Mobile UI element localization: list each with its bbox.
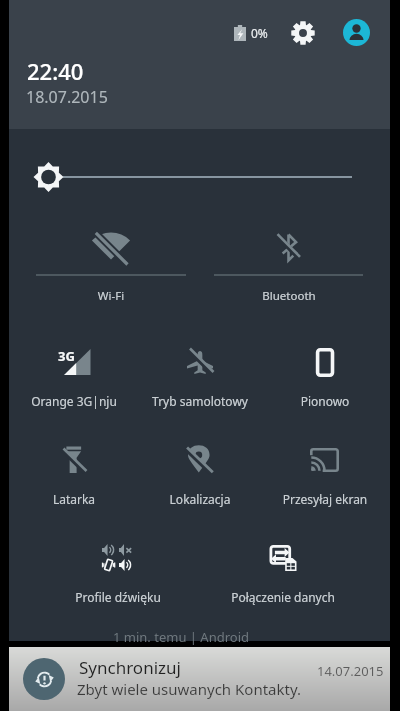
staticText: Lokalizacja <box>138 491 262 507</box>
button[interactable]: Przesyłaj ekran <box>263 426 387 494</box>
staticText: Zbyt wiele usuwanych Kontakty. <box>77 679 301 699</box>
button[interactable]: Połączenie danych <box>221 524 345 592</box>
button[interactable]: Wi-Fi toggle <box>36 215 186 307</box>
staticText: 18.07.2015 <box>26 86 108 108</box>
button[interactable]: Latarka <box>12 426 136 494</box>
button[interactable]: Brightness <box>9 150 390 204</box>
staticText: Tryb samolotowy <box>138 393 262 409</box>
button[interactable]: Bluetooth toggle <box>214 215 363 307</box>
button[interactable]: User profile <box>335 11 377 53</box>
staticText: 3G <box>58 347 75 365</box>
button[interactable]: Settings <box>282 12 324 54</box>
staticText: Orange 3G|nju <box>12 393 136 409</box>
button[interactable]: Lokalizacja <box>138 426 262 494</box>
button[interactable]: Synchronizuj <box>9 647 390 711</box>
button[interactable]: Pionowo <box>263 328 387 396</box>
staticText: Latarka <box>12 491 136 507</box>
staticText: Połączenie danych <box>221 589 345 605</box>
button[interactable]: Profile dźwięku <box>56 524 180 592</box>
button[interactable]: Tryb samolotowy <box>138 328 262 396</box>
staticText: Bluetooth <box>249 288 329 304</box>
staticText: Profile dźwięku <box>56 589 180 605</box>
button[interactable]: Orange 3G|nju <box>12 328 136 396</box>
staticText: 22:40 <box>27 56 84 86</box>
staticText: Synchronizuj <box>79 656 181 679</box>
staticText: Pionowo <box>263 393 387 409</box>
staticText: 0% <box>251 25 268 41</box>
staticText: 1 min. temu | Android <box>113 628 250 646</box>
staticText: Wi-Fi <box>71 288 151 304</box>
staticText: 14.07.2015 <box>317 662 384 680</box>
staticText: Przesyłaj ekran <box>263 491 387 507</box>
